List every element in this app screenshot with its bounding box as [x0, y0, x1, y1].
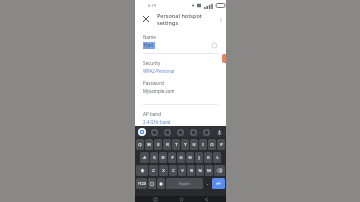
button[interactable]: R [163, 139, 171, 150]
staticText: B [190, 168, 193, 174]
button[interactable]: Translate [189, 128, 197, 136]
staticText: R [166, 142, 169, 148]
staticText: Z [152, 168, 155, 174]
staticText: U [192, 142, 196, 148]
button[interactable]: Password [135, 80, 226, 94]
button[interactable]: AP band [135, 111, 226, 125]
button[interactable]: Security [135, 60, 226, 74]
staticText: K [207, 155, 210, 161]
staticText: Hari [144, 42, 154, 49]
button[interactable]: M [205, 165, 213, 176]
button[interactable]: Q [136, 139, 144, 150]
staticText: N [198, 168, 202, 174]
button[interactable]: B [187, 165, 195, 176]
button[interactable]: T [172, 139, 180, 150]
button[interactable]: Recents [150, 196, 160, 202]
button[interactable]: Settings [176, 128, 184, 136]
button[interactable]: A [140, 152, 149, 163]
button[interactable]: Enter [212, 178, 225, 189]
button[interactable]: U [190, 139, 198, 150]
button[interactable]: F [168, 152, 176, 163]
button[interactable]: GIF [163, 128, 171, 136]
button[interactable]: P [217, 139, 225, 150]
button[interactable]: V [178, 165, 186, 176]
button[interactable]: H [186, 152, 194, 163]
staticText: Mysample.com [143, 88, 175, 94]
button[interactable]: G [177, 152, 185, 163]
button[interactable]: L [213, 152, 221, 163]
button[interactable]: ?123 [136, 178, 147, 189]
button[interactable]: Shift [136, 165, 148, 176]
button[interactable]: Backspace [214, 165, 225, 176]
staticText: 2.4 GHz band [143, 119, 171, 125]
button[interactable]: O [208, 139, 216, 150]
button[interactable]: Emoji [148, 178, 156, 189]
button[interactable]: S [150, 152, 158, 163]
staticText: O [210, 142, 214, 148]
button[interactable]: Voice input [215, 128, 223, 136]
button[interactable]: More [202, 128, 210, 136]
staticText: Q [138, 142, 142, 148]
staticText: V [181, 168, 184, 174]
staticText: S [153, 155, 156, 161]
staticText: D [161, 155, 165, 161]
button[interactable]: Google [138, 128, 146, 136]
staticText: 6:19 [148, 3, 156, 8]
button[interactable]: Stickers [150, 128, 158, 136]
button[interactable]: X [159, 165, 168, 176]
button[interactable]: C [169, 165, 177, 176]
staticText: Password [143, 80, 164, 86]
staticText: F [171, 155, 174, 161]
staticText: Personal hotspot settings [157, 12, 221, 26]
button[interactable]: K [204, 152, 212, 163]
button[interactable]: Clear text [211, 42, 218, 49]
staticText: E [157, 142, 160, 148]
staticText: AP band [143, 111, 161, 117]
staticText: X [162, 168, 165, 174]
staticText: Y [184, 142, 187, 148]
button[interactable]: Back [201, 196, 211, 202]
button[interactable]: J [195, 152, 203, 163]
staticText: Security [143, 60, 161, 66]
button[interactable]: E [154, 139, 162, 150]
staticText: G [179, 155, 183, 161]
staticText: J [198, 155, 200, 161]
staticText: A [143, 155, 146, 161]
button[interactable]: Z [149, 165, 158, 176]
button[interactable]: Space [166, 178, 203, 189]
staticText: . [207, 181, 209, 186]
staticText: W [147, 142, 151, 148]
staticText: Name [143, 34, 156, 40]
staticText: H [188, 155, 192, 161]
staticText: C [172, 168, 175, 174]
button[interactable]: Y [181, 139, 189, 150]
button[interactable]: Close [140, 13, 152, 25]
staticText: T [175, 142, 178, 148]
button[interactable]: Name [135, 34, 226, 49]
button[interactable]: Language [157, 178, 165, 189]
button[interactable]: I [199, 139, 207, 150]
staticText: L [216, 155, 219, 161]
staticText: P [220, 142, 223, 148]
staticText: ?123 [138, 181, 146, 186]
button[interactable]: Home [176, 196, 186, 202]
staticText: English [179, 182, 190, 186]
button[interactable]: N [196, 165, 204, 176]
button[interactable]: W [145, 139, 153, 150]
staticText: I [202, 142, 204, 148]
staticText: M [207, 168, 211, 174]
staticText: WPA2-Personal [143, 68, 175, 74]
button[interactable]: D [159, 152, 167, 163]
button[interactable]: . [204, 178, 211, 189]
